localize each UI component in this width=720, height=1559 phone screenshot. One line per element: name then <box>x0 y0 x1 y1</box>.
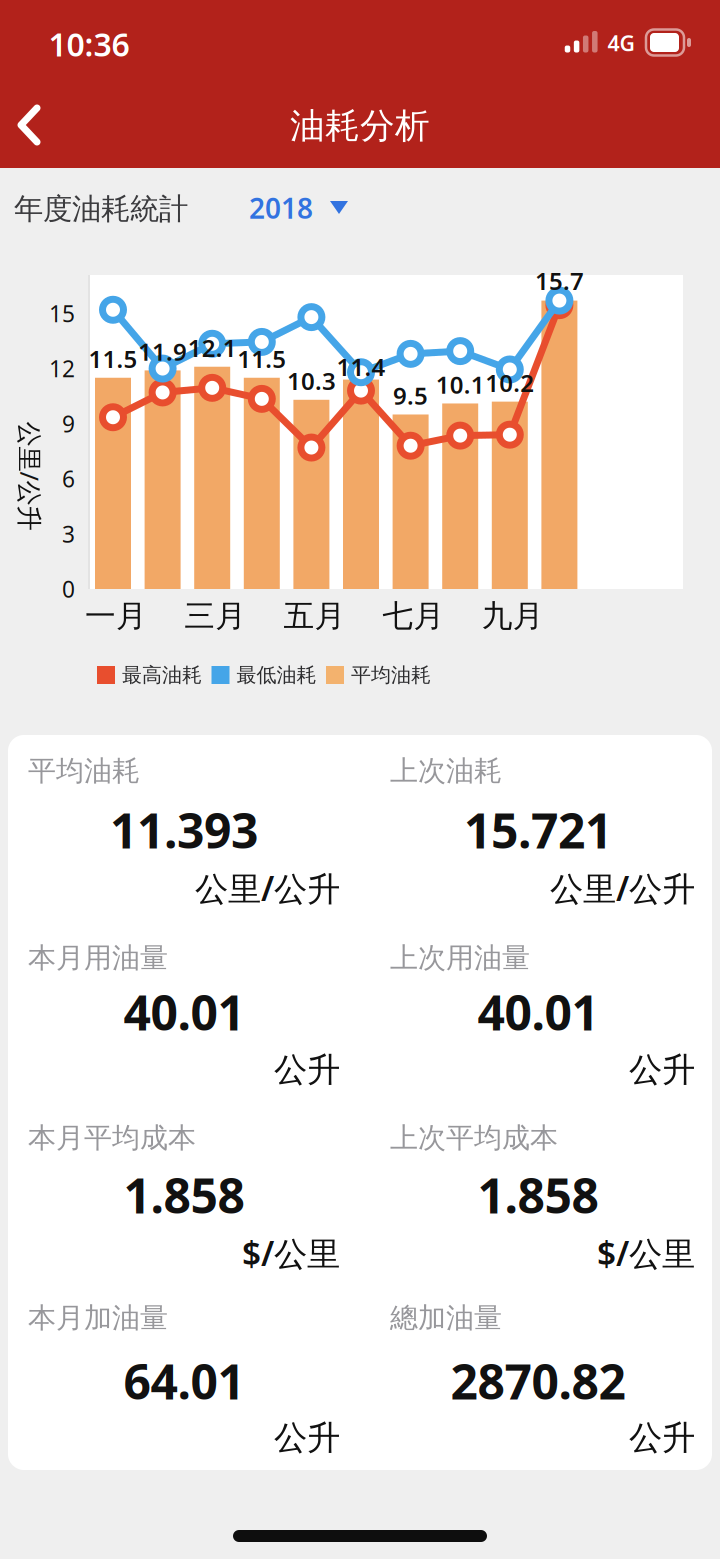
staticText: 總加油量 <box>390 1301 502 1335</box>
staticText: 12 <box>49 353 75 384</box>
staticText: 2018 <box>249 189 313 227</box>
staticText: 本月加油量 <box>28 1301 168 1335</box>
button[interactable] <box>18 104 62 146</box>
staticText: 15.721 <box>464 798 612 862</box>
staticText: 三月 <box>184 597 246 635</box>
button[interactable]: 2018 <box>250 179 370 237</box>
staticText: 年度油耗統計 <box>14 191 188 227</box>
staticText: 上次油耗 <box>390 754 502 788</box>
staticText: 1.858 <box>477 1163 598 1227</box>
staticText: 最低油耗 <box>236 663 316 687</box>
staticText: 公升 <box>629 1049 695 1090</box>
staticText: 最高油耗 <box>122 663 202 687</box>
staticText: 11.9 <box>138 335 187 367</box>
staticText: 油耗分析 <box>290 105 430 147</box>
staticText: 12.1 <box>188 332 237 364</box>
staticText: 0 <box>62 574 75 604</box>
staticText: 1.858 <box>123 1163 244 1227</box>
staticText: 64.01 <box>123 1349 244 1413</box>
staticText: 平均油耗 <box>351 663 431 687</box>
staticText: 上次用油量 <box>390 941 530 975</box>
staticText: 五月 <box>283 597 345 635</box>
staticText: 40.01 <box>477 980 598 1044</box>
staticText: 2870.82 <box>450 1349 625 1413</box>
staticText: 10.3 <box>287 365 336 397</box>
staticText: 10.2 <box>485 367 534 399</box>
staticText: 公里/公升 <box>195 866 340 910</box>
staticText: 公升 <box>629 1417 695 1458</box>
staticText: $/公里 <box>242 1231 340 1275</box>
staticText: 6 <box>62 464 75 494</box>
staticText: 本月平均成本 <box>28 1121 196 1155</box>
staticText: 11.393 <box>110 798 258 862</box>
staticText: 平均油耗 <box>28 754 140 788</box>
staticText: 上次平均成本 <box>390 1121 558 1155</box>
staticText: 七月 <box>383 597 445 635</box>
staticText: 公里/公升 <box>550 866 695 910</box>
staticText: 3 <box>62 519 75 549</box>
staticText: $/公里 <box>597 1231 695 1275</box>
staticText: 4G <box>607 29 634 57</box>
staticText: 15 <box>49 298 75 328</box>
staticText: 11.5 <box>237 343 286 375</box>
staticText: 公升 <box>274 1049 340 1090</box>
staticText: 公里/公升 <box>0 459 84 493</box>
staticText: 10:36 <box>48 23 129 65</box>
staticText: 9.5 <box>393 379 428 411</box>
staticText: 11.5 <box>88 343 137 375</box>
staticText: 40.01 <box>123 980 244 1044</box>
staticText: 11.4 <box>336 351 385 382</box>
staticText: 10.1 <box>436 368 485 400</box>
staticText: 15.7 <box>535 265 584 297</box>
staticText: 9 <box>62 409 75 439</box>
staticText: 九月 <box>482 597 544 635</box>
staticText: 公升 <box>274 1417 340 1458</box>
staticText: 一月 <box>85 597 147 635</box>
staticText: 本月用油量 <box>28 941 168 975</box>
